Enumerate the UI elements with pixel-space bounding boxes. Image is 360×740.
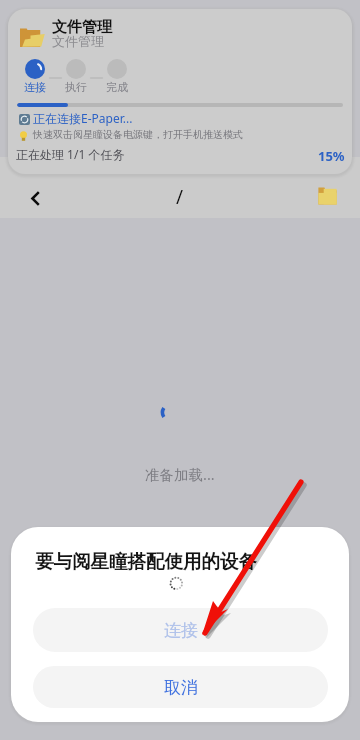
button[interactable]: 文件管理: [8, 9, 352, 174]
staticText: 完成: [106, 80, 128, 94]
staticText: 连接: [164, 620, 198, 641]
staticText: 15%: [318, 147, 345, 165]
staticText: 文件管理: [52, 18, 112, 37]
button[interactable]: 取消: [33, 666, 328, 708]
staticText: 取消: [164, 677, 198, 698]
staticText: 连接: [24, 80, 46, 94]
button[interactable]: 连接: [33, 608, 328, 652]
button[interactable]: Back: [19, 182, 51, 214]
staticText: 正在处理 1/1 个任务: [16, 146, 125, 162]
staticText: 准备加载...: [145, 464, 215, 484]
staticText: 执行: [65, 80, 87, 94]
staticText: /: [176, 184, 184, 210]
staticText: 要与阅星瞳搭配使用的设备: [35, 550, 257, 573]
staticText: 快速双击阅星瞳设备电源键，打开手机推送模式: [33, 128, 243, 141]
staticText: 正在连接E-Paper...: [33, 110, 133, 126]
staticText: 文件管理: [52, 33, 104, 49]
button[interactable]: Folder: [311, 180, 343, 212]
